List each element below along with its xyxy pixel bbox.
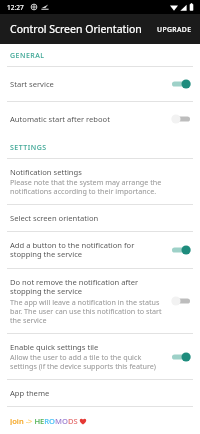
staticText: Control Screen Orientation	[10, 22, 142, 36]
button[interactable]: Automatic start after reboot	[0, 102, 200, 136]
button[interactable]: Add a button to the notification for sto…	[0, 232, 200, 268]
button[interactable]: Add a button to the notification for sto…	[168, 241, 194, 259]
button[interactable]: Automatic start after reboot	[168, 110, 194, 128]
button[interactable]: App theme	[0, 380, 200, 406]
staticText: UPGRADE	[157, 25, 192, 34]
button[interactable]: Select screen orientation	[0, 205, 200, 231]
staticText: Select screen orientation	[10, 213, 99, 223]
staticText: Join -> HEROMODS	[10, 416, 78, 425]
staticText: Please note that the system may arrange …	[10, 177, 190, 196]
staticText: Automatic start after reboot	[10, 114, 110, 124]
staticText: The app will leave a notification in the…	[10, 297, 164, 325]
button[interactable]: Join -> HEROMODS	[0, 407, 200, 434]
staticText: Enable quick settings tile	[10, 342, 99, 352]
button[interactable]: Enable quick settings tile	[168, 348, 194, 366]
button[interactable]: Enable quick settings tile	[0, 334, 200, 379]
button[interactable]: Notification settings	[0, 159, 200, 204]
staticText: 12:27	[7, 3, 24, 12]
button[interactable]: Do not remove the notification after sto…	[168, 292, 194, 310]
button[interactable]: Start service	[0, 67, 200, 101]
staticText: Notification settings	[10, 167, 82, 177]
staticText: Allow the user to add a tile to the quic…	[10, 352, 164, 371]
staticText: Do not remove the notification after sto…	[10, 277, 164, 297]
button[interactable]: Start service	[168, 75, 194, 93]
staticText: GENERAL	[10, 51, 45, 61]
staticText: Add a button to the notification for sto…	[10, 240, 164, 260]
button[interactable]: Do not remove the notification after sto…	[0, 269, 200, 333]
button[interactable]: UPGRADE	[149, 19, 200, 40]
staticText: SETTINGS	[10, 143, 47, 153]
staticText: App theme	[10, 388, 50, 398]
staticText: Start service	[10, 79, 54, 89]
